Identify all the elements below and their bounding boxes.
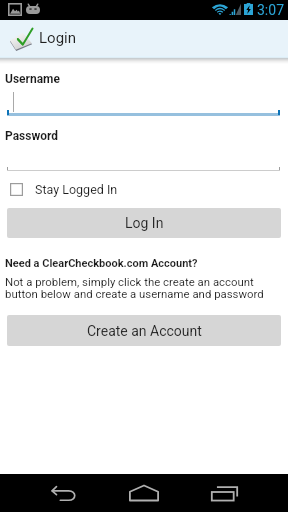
staticText: 3:07: [257, 2, 284, 18]
staticText: Not a problem, simply click the create a…: [5, 275, 264, 301]
staticText: Create an Account: [87, 323, 202, 339]
staticText: Username: [5, 72, 60, 86]
staticText: Password: [5, 129, 59, 143]
staticText: Stay Logged In: [35, 182, 118, 197]
button[interactable]: Stay Logged In: [10, 182, 118, 197]
button[interactable]: Recent apps: [200, 474, 248, 512]
button[interactable]: [7, 143, 280, 171]
staticText: Need a ClearCheckbook.com Account?: [5, 257, 198, 270]
button[interactable]: Log In: [7, 208, 281, 238]
button[interactable]: Create an Account: [7, 315, 281, 346]
staticText: Log In: [125, 215, 164, 231]
button[interactable]: Home: [120, 474, 168, 512]
button[interactable]: Login: [0, 20, 288, 56]
staticText: Login: [39, 29, 76, 47]
button[interactable]: Back: [40, 474, 88, 512]
button[interactable]: [7, 86, 280, 116]
